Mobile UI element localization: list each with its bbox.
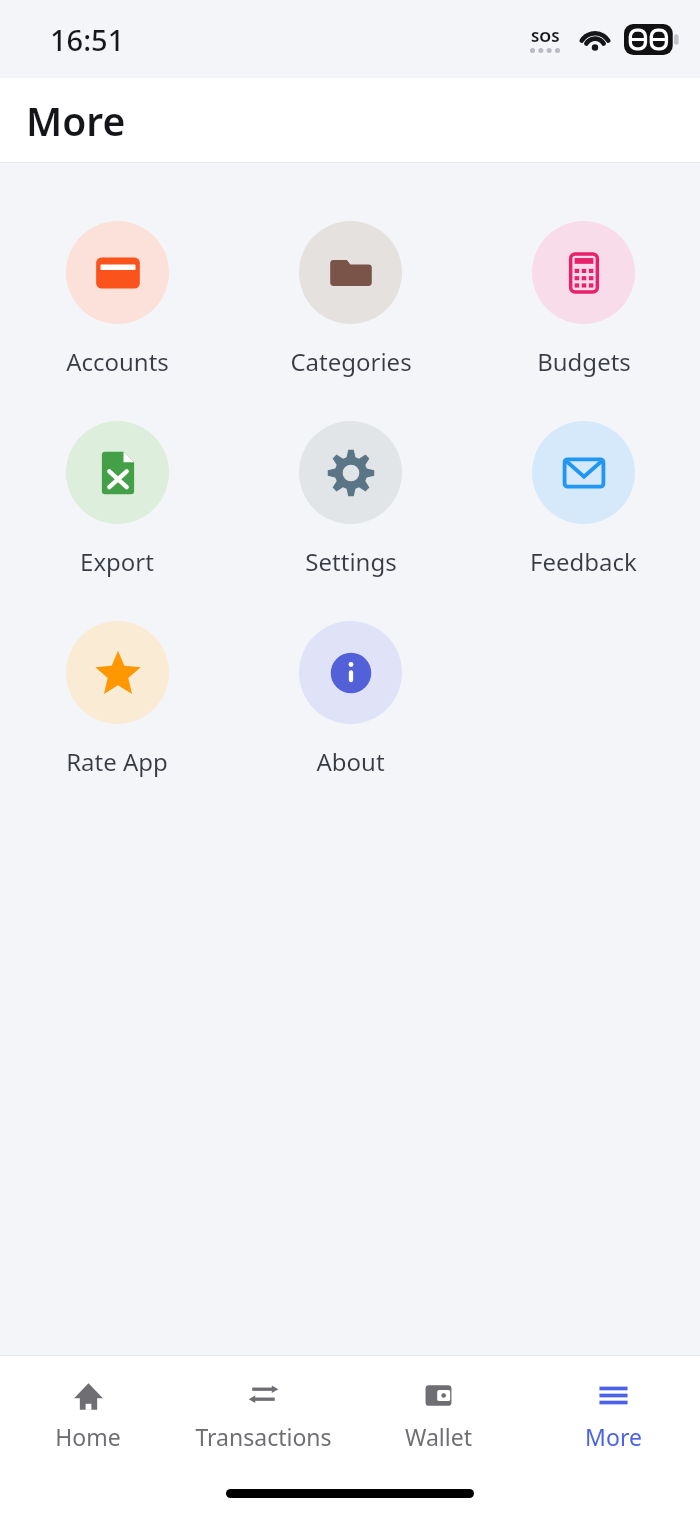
staticText: Rate App bbox=[66, 745, 168, 778]
button[interactable]: Categories bbox=[234, 221, 467, 378]
staticText: Export bbox=[80, 545, 154, 578]
button[interactable]: Rate App bbox=[0, 621, 234, 778]
button[interactable]: Home bbox=[9, 1374, 167, 1455]
staticText: Home bbox=[55, 1421, 121, 1452]
staticText: Budgets bbox=[537, 345, 631, 378]
staticText: Settings bbox=[305, 545, 397, 578]
button[interactable]: Settings bbox=[234, 421, 467, 578]
staticText: More bbox=[585, 1421, 642, 1452]
staticText: Feedback bbox=[530, 545, 637, 578]
staticText: More bbox=[26, 94, 126, 147]
staticText: Wallet bbox=[405, 1421, 472, 1452]
button[interactable]: More bbox=[534, 1374, 692, 1455]
staticText: Accounts bbox=[66, 345, 169, 378]
staticText: About bbox=[316, 745, 385, 778]
button[interactable]: Wallet bbox=[359, 1374, 517, 1455]
button[interactable]: Budgets bbox=[467, 221, 700, 378]
staticText: 16:51 bbox=[50, 20, 125, 59]
button[interactable]: About bbox=[234, 621, 467, 778]
button[interactable]: Feedback bbox=[467, 421, 700, 578]
button[interactable]: Export bbox=[0, 421, 234, 578]
staticText: Categories bbox=[290, 345, 412, 378]
staticText: Transactions bbox=[195, 1421, 332, 1452]
button[interactable]: Accounts bbox=[0, 221, 234, 378]
staticText: SOS bbox=[531, 26, 560, 46]
button[interactable]: Transactions bbox=[184, 1374, 342, 1455]
